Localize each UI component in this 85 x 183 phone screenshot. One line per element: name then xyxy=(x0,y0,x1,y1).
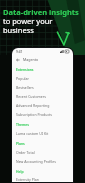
button[interactable]: Recent Customers xyxy=(12,92,73,101)
button[interactable]: Extensity Plan xyxy=(12,176,73,182)
staticText: Bestsellers xyxy=(16,85,34,90)
staticText: Advanced Reporting xyxy=(16,103,50,108)
button[interactable]: Bestsellers xyxy=(12,83,73,92)
button[interactable]: Luma custom UI Kit xyxy=(12,129,73,138)
button[interactable]: New Accounting Profiles xyxy=(12,157,73,166)
staticText: Popular xyxy=(16,76,29,81)
staticText: Plans xyxy=(16,141,25,146)
staticText: Luma custom UI Kit xyxy=(16,131,49,136)
staticText: Data-driven insights to power your busin… xyxy=(3,7,79,35)
staticText: Magento xyxy=(23,57,39,62)
button[interactable]: Popular xyxy=(12,74,73,83)
button[interactable]: Advanced Reporting xyxy=(12,101,73,110)
button[interactable]: Back xyxy=(12,55,73,64)
button[interactable]: Help xyxy=(12,166,73,176)
staticText: Help xyxy=(16,169,24,174)
staticText: 9:41 xyxy=(16,50,23,54)
button[interactable]: Themes xyxy=(12,119,73,129)
staticText: Subscription Products xyxy=(16,112,52,117)
staticText: Recent Customers xyxy=(16,94,46,99)
staticText: Extensions xyxy=(16,67,34,72)
other: Back xyxy=(16,58,20,62)
button[interactable]: Order Total xyxy=(12,148,73,157)
staticText: New Accounting Profiles xyxy=(16,159,56,164)
button[interactable]: Plans xyxy=(12,138,73,148)
button[interactable]: Subscription Products xyxy=(12,110,73,119)
button[interactable]: Extensions xyxy=(12,64,73,74)
staticText: Order Total xyxy=(16,150,35,155)
staticText: Themes xyxy=(16,122,29,127)
staticText: Extensity Plan xyxy=(16,177,39,182)
